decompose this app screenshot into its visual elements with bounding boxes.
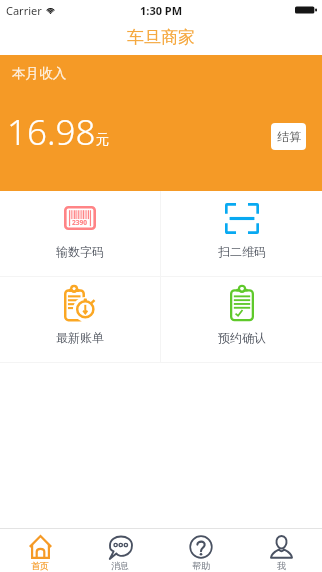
staticText: 元 — [96, 131, 110, 148]
staticText: 1:30 PM — [140, 3, 183, 18]
staticText: 消息 — [111, 560, 129, 571]
staticText: 帮助 — [192, 560, 210, 571]
staticText: 输数字码 — [56, 244, 104, 259]
staticText: 本月收入 — [12, 65, 67, 82]
staticText: 预约确认 — [218, 330, 266, 345]
button[interactable]: 扫二维码 — [161, 191, 322, 276]
staticText: 我 — [277, 560, 286, 571]
button[interactable]: 结算 — [271, 123, 306, 150]
staticText: 16.98 — [7, 108, 96, 156]
staticText: 车旦商家 — [127, 27, 195, 48]
button[interactable]: 首页 — [0, 529, 80, 572]
button[interactable]: 我 — [241, 529, 322, 572]
button[interactable]: 消息 — [80, 529, 160, 572]
staticText: 结算 — [277, 129, 301, 144]
staticText: 最新账单 — [56, 330, 104, 345]
button[interactable]: 帮助 — [160, 529, 241, 572]
staticText: 首页 — [31, 560, 49, 571]
staticText: Carrier — [6, 3, 42, 18]
button[interactable]: 2390 — [0, 191, 160, 276]
button[interactable]: 预约确认 — [161, 277, 322, 362]
button[interactable]: 最新账单 — [0, 277, 160, 362]
staticText: 扫二维码 — [218, 244, 266, 259]
staticText: 2390 — [72, 218, 88, 227]
